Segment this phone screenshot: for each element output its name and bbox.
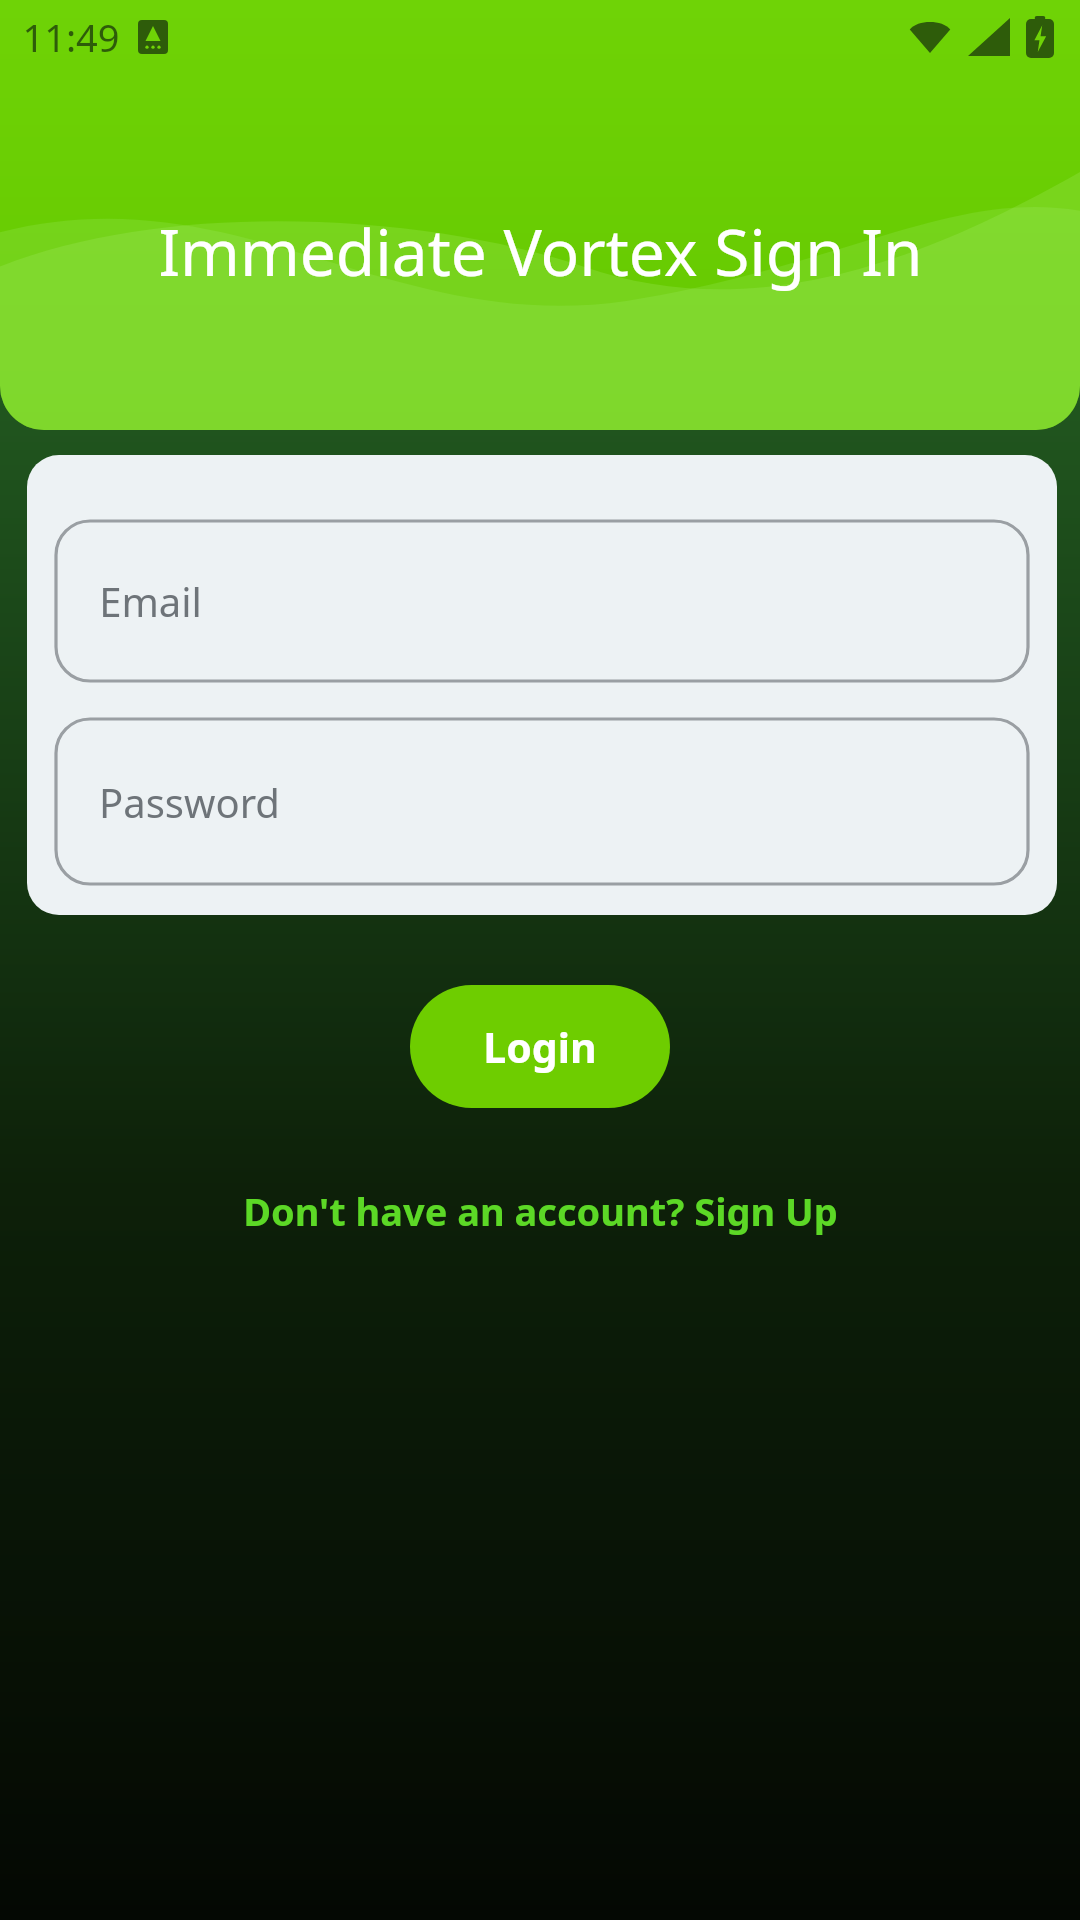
staticText: 11:49: [22, 11, 120, 63]
button[interactable]: Email: [55, 520, 1029, 682]
button[interactable]: Don't have an account? Sign Up: [0, 1175, 1080, 1247]
staticText: Password: [99, 775, 280, 829]
button[interactable]: Password: [55, 718, 1029, 885]
staticText: Email: [99, 574, 202, 628]
button[interactable]: Login: [410, 985, 670, 1108]
staticText: Immediate Vortex Sign In: [158, 208, 923, 295]
staticText: Login: [483, 1019, 597, 1075]
staticText: Don't have an account? Sign Up: [243, 1185, 838, 1237]
